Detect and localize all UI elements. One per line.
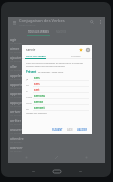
staticText: Verbe Français [19,23,36,26]
staticText: 1er groupe [10,114,22,117]
button[interactable]: Ils [22,105,92,111]
staticText: appeler [10,73,23,78]
button[interactable]: aimer [8,45,38,54]
staticText: Présent devant les pronoms proposés [26,65,65,68]
button[interactable]: TOUS LES VERBES [25,53,46,58]
button[interactable]: avancer [8,144,38,152]
staticText: sert [34,88,40,92]
staticText: Il [26,89,28,92]
staticText: apprendre [10,91,27,96]
staticText: Je [26,77,29,80]
staticText: Vérifiez vos réponses [26,112,47,115]
staticText: Vous [26,101,32,104]
button[interactable]: apprendre [8,90,38,99]
staticText: apporter [10,82,25,87]
button[interactable]: Je [22,75,92,81]
staticText: sers [34,82,40,86]
button[interactable]: Nous [22,93,92,99]
staticText: servent [34,106,45,110]
staticText: TOUS LES VERBES [26,54,46,57]
staticText: 1er groupe [10,141,22,144]
staticText: 1er groupe [10,123,22,126]
staticText: de l'indicatif - verbe servir [38,71,64,74]
button[interactable]: Favourite [77,46,84,53]
button[interactable]: Back [28,166,39,177]
button[interactable]: SUIVANT [50,127,65,132]
staticText: VALIDER [77,128,88,131]
staticText: aller [10,64,17,69]
staticText: TOUS LES VERBES [28,30,49,33]
staticText: attendre [10,136,24,141]
staticText: Conjugaison des Verbes [19,18,65,23]
button[interactable]: Vous [22,99,92,105]
button[interactable]: Home [51,165,63,177]
staticText: 1er groupe [10,96,22,99]
staticText: appuyer [10,100,24,105]
staticText: aimer [10,46,20,51]
button[interactable]: Recents [75,166,86,177]
staticText: arriver [10,109,21,114]
button[interactable]: AIDE [65,127,75,132]
staticText: 1er groupe [10,69,22,72]
button[interactable]: VALIDER [75,127,90,132]
button[interactable]: arrêter [8,117,38,126]
button[interactable]: assurer [8,126,38,135]
staticText: servir [26,47,36,52]
button[interactable]: More options [96,18,104,26]
staticText: 1er groupe [10,132,22,135]
staticText: FAVORIS [71,54,81,57]
staticText: SUIVANT [52,128,63,131]
button[interactable]: ajouter [8,54,38,63]
button[interactable]: aller [8,63,38,72]
button[interactable]: Settings [84,46,91,53]
button[interactable]: Il [22,87,92,93]
staticText: sers [34,76,40,80]
staticText: arrêter [10,118,22,123]
staticText: Ils [26,107,29,110]
staticText: Nous [26,95,33,98]
button[interactable]: attendre [8,135,38,144]
button[interactable]: Tu [22,81,92,87]
staticText: 1er groupe [10,42,22,45]
staticText: avancer [10,145,23,150]
staticText: ajouter [10,55,22,60]
staticText: Présent [26,70,37,74]
staticText: 1er groupe [10,87,22,90]
button[interactable]: FAVORIS [65,53,86,58]
staticText: AIDE [67,128,73,131]
staticText: 1er groupe [10,60,22,63]
button[interactable]: arriver [8,108,38,117]
staticText: agir [10,37,17,42]
staticText: assurer [10,127,22,132]
button[interactable]: Search [88,18,96,26]
button[interactable]: appuyer [8,99,38,108]
staticText: 1er groupe [10,78,22,81]
staticText: servons [34,94,45,98]
button[interactable]: appeler [8,72,38,81]
staticText: Place les formes conjuguées du verbe ser… [26,62,83,65]
button[interactable]: apporter [8,81,38,90]
staticText: 1er groupe [10,105,22,108]
staticText: 1er groupe [10,150,22,152]
staticText: Tu [26,83,29,86]
staticText: 1er groupe [10,51,22,54]
button[interactable]: Menu [11,19,18,26]
staticText: servez [34,100,43,104]
button[interactable]: TOUS LES VERBES [27,27,50,36]
button[interactable]: agir [8,36,38,45]
